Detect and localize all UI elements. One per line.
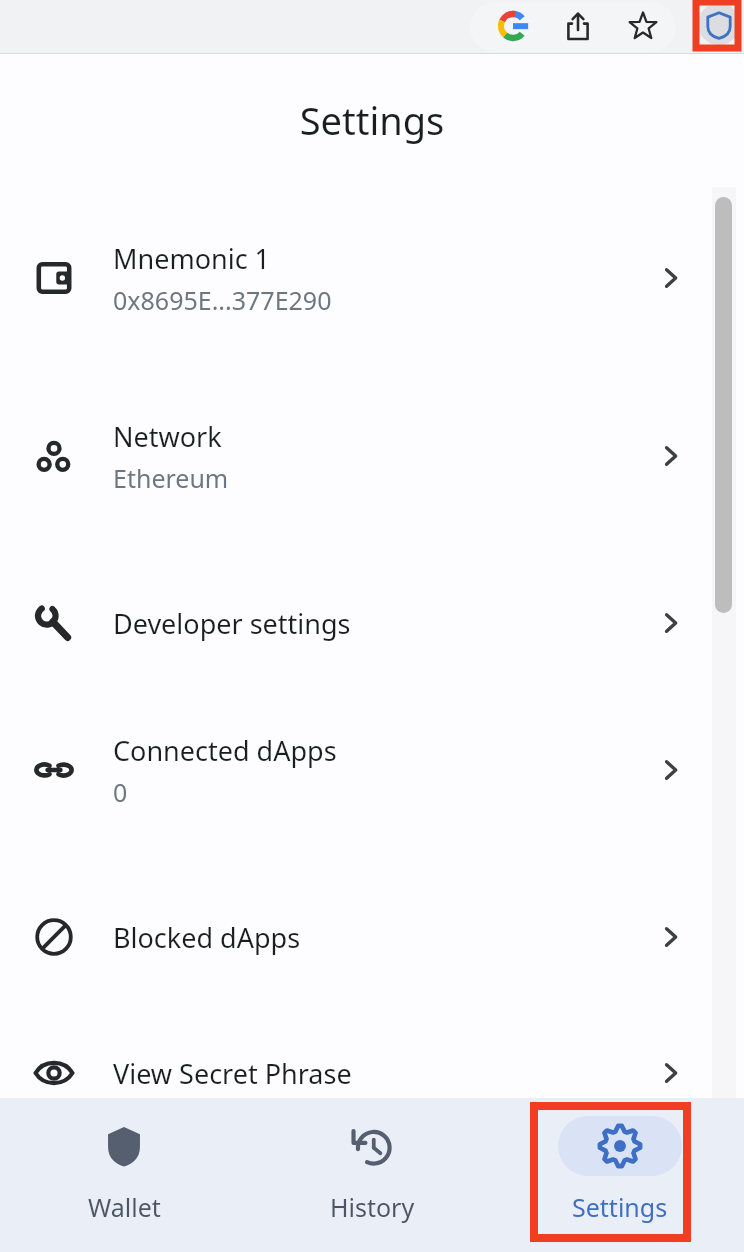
staticText: View Secret Phrase [113, 1055, 352, 1092]
button[interactable]: View Secret Phrase [0, 1028, 744, 1118]
staticText: Connected dApps [113, 732, 337, 769]
staticText: Developer settings [113, 605, 351, 642]
button[interactable]: Share [555, 3, 601, 49]
staticText: Ethereum [113, 461, 229, 495]
staticText: Blocked dApps [113, 919, 301, 956]
button[interactable]: Connected dApps [0, 714, 744, 826]
staticText: Settings [572, 1190, 668, 1224]
staticText: Settings [0, 94, 744, 146]
button[interactable]: Developer settings [0, 578, 744, 668]
button[interactable]: Shield [694, 0, 744, 50]
button[interactable]: Bookmark [620, 3, 666, 49]
button[interactable]: Blocked dApps [0, 892, 744, 982]
staticText: Network [113, 418, 222, 455]
staticText: Mnemonic 1 [113, 240, 271, 277]
button[interactable]: Google [490, 3, 536, 49]
button[interactable]: History [248, 1098, 496, 1224]
staticText: 0x8695E...377E290 [113, 283, 332, 317]
staticText: History [330, 1190, 415, 1224]
button[interactable]: Settings [496, 1098, 744, 1224]
staticText: 0 [113, 775, 128, 809]
button[interactable]: Wallet [0, 1098, 248, 1224]
staticText: Wallet [88, 1190, 161, 1224]
button[interactable]: Mnemonic 1 [0, 222, 744, 334]
button[interactable]: Network [0, 400, 744, 512]
